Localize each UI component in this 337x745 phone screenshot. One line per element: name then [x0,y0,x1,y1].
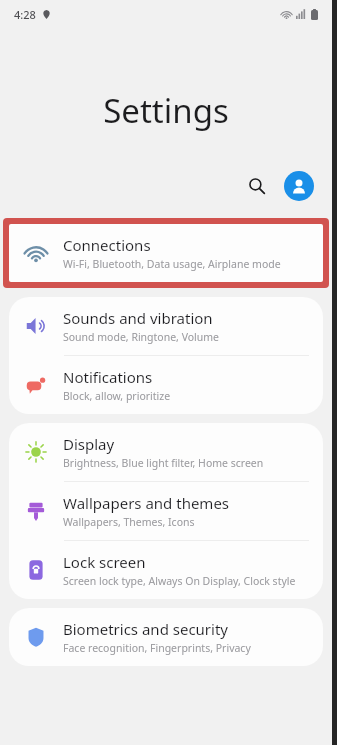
button[interactable]: Notifications [9,356,323,414]
button[interactable]: Display [9,423,323,481]
staticText: 4:28 [14,7,36,22]
staticText: Wi-Fi, Bluetooth, Data usage, Airplane m… [63,257,281,271]
staticText: Notifications [63,367,153,387]
staticText: Settings [0,88,332,133]
staticText: Sounds and vibration [63,308,213,328]
staticText: Screen lock type, Always On Display, Clo… [63,574,296,588]
button[interactable]: Connections [9,224,323,282]
button[interactable]: Search [240,169,274,203]
button[interactable]: Account [284,171,314,201]
button[interactable]: Sounds and vibration [9,297,323,355]
staticText: Sound mode, Ringtone, Volume [63,330,220,344]
staticText: Wallpapers, Themes, Icons [63,515,195,529]
staticText: Biometrics and security [63,619,229,639]
staticText: Block, allow, prioritize [63,389,171,403]
staticText: Brightness, Blue light filter, Home scre… [63,456,264,470]
button[interactable]: Biometrics and security [9,608,323,666]
staticText: Connections [63,235,151,255]
button[interactable]: Wallpapers and themes [9,482,323,540]
staticText: Wallpapers and themes [63,493,230,513]
staticText: Display [63,434,115,454]
staticText: Face recognition, Fingerprints, Privacy [63,641,251,655]
button[interactable]: Lock screen [9,541,323,599]
staticText: Lock screen [63,552,146,572]
